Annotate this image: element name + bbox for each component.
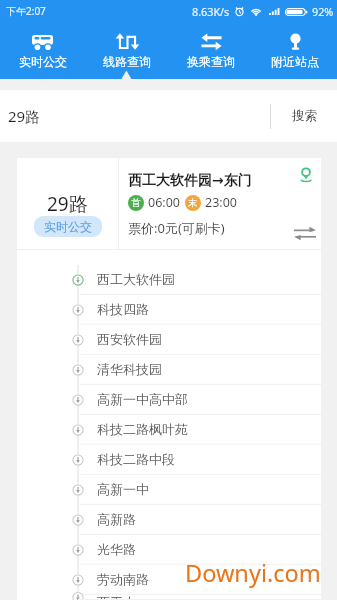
- button[interactable]: Map: [299, 168, 313, 182]
- staticText: 科技二路中段: [97, 451, 175, 467]
- staticText: 高新一中: [97, 481, 149, 497]
- button[interactable]: 西工大: [17, 595, 321, 600]
- staticText: 29路: [47, 191, 88, 217]
- staticText: 线路查询: [103, 54, 151, 69]
- button[interactable]: 科技二路枫叶苑: [17, 415, 321, 445]
- staticText: 西工大: [97, 594, 136, 599]
- staticText: 科技二路枫叶苑: [97, 421, 188, 437]
- staticText: 高新路: [97, 511, 136, 527]
- staticText: 实时公交: [44, 219, 92, 234]
- button[interactable]: 实时公交: [0, 22, 85, 79]
- button[interactable]: 高新一中高中部: [17, 385, 321, 415]
- staticText: Downyi.com: [185, 557, 321, 589]
- staticText: 06:00: [148, 194, 180, 211]
- button[interactable]: 清华科技园: [17, 355, 321, 385]
- staticText: 下午2:07: [6, 4, 46, 18]
- staticText: 光华路: [97, 541, 136, 557]
- staticText: 29路: [8, 106, 41, 126]
- staticText: 高新一中高中部: [97, 391, 188, 407]
- staticText: 首: [131, 197, 141, 209]
- button[interactable]: 搜索: [271, 90, 337, 142]
- button[interactable]: 光华路: [17, 535, 321, 565]
- staticText: 票价:0元(可刷卡): [128, 219, 225, 237]
- staticText: 92%: [312, 4, 334, 19]
- button[interactable]: Reverse direction: [294, 227, 316, 241]
- button[interactable]: 29路: [17, 158, 118, 249]
- staticText: 23:00: [205, 194, 237, 211]
- staticText: 劳动南路: [97, 571, 149, 587]
- button[interactable]: 科技二路中段: [17, 445, 321, 475]
- staticText: 末: [188, 197, 198, 209]
- staticText: 实时公交: [19, 54, 67, 69]
- staticText: 西工大软件园→东门: [128, 172, 252, 190]
- staticText: 科技四路: [97, 301, 149, 317]
- button[interactable]: 高新一中: [17, 475, 321, 505]
- staticText: 搜索: [292, 108, 317, 124]
- button[interactable]: 西安软件园: [17, 325, 321, 355]
- button[interactable]: 附近站点: [253, 22, 337, 79]
- button[interactable]: 西工大软件园: [17, 265, 321, 295]
- button[interactable]: 线路查询: [85, 22, 169, 79]
- button[interactable]: 高新路: [17, 505, 321, 535]
- button[interactable]: 换乘查询: [169, 22, 253, 79]
- staticText: 西工大软件园: [97, 271, 175, 287]
- staticText: 清华科技园: [97, 361, 162, 377]
- staticText: 换乘查询: [187, 54, 235, 69]
- staticText: 8.63K/s: [192, 4, 230, 19]
- staticText: 西安软件园: [97, 331, 162, 347]
- staticText: 附近站点: [271, 54, 319, 69]
- button[interactable]: 科技四路: [17, 295, 321, 325]
- button[interactable]: 劳动南路: [17, 565, 321, 595]
